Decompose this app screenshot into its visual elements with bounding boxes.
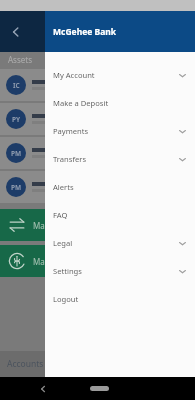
button[interactable]: PM [0,137,195,169]
button[interactable]: IC [0,69,195,101]
button[interactable]: Transfers [45,145,195,173]
button[interactable]: Payments [45,117,195,145]
staticText: Logout [53,294,186,304]
button[interactable]: PY [0,103,195,135]
staticText: Payments [53,126,179,136]
staticText: PM [11,149,22,158]
staticText: FAQ [53,210,186,220]
staticText: Accounts [7,358,44,370]
staticText: Settings [53,266,179,276]
button[interactable]: Make a Deposit [45,89,195,117]
button[interactable]: My Account [45,61,195,89]
staticText: Alerts [53,182,186,192]
button[interactable]: Settings [45,257,195,285]
staticText: Make a Deposit [53,98,186,108]
staticText: PY [12,115,21,124]
staticText: PM [11,183,22,192]
staticText: My Account [53,70,179,80]
button[interactable]: Make a Payment [0,245,195,277]
button[interactable]: Logout [45,285,195,313]
staticText: IC [13,81,20,90]
staticText: McGehee Bank [53,26,117,38]
button[interactable]: Legal [45,229,195,257]
button[interactable]: PM [0,171,195,203]
button[interactable]: Make a Transfer [0,209,195,241]
button[interactable]: Home [90,386,109,391]
button[interactable]: System back [34,380,52,398]
staticText: Make a Transfer [33,220,94,231]
button[interactable]: Back [5,21,27,43]
staticText: Transfers [53,154,179,164]
button[interactable]: McGehee Bank [45,11,195,52]
staticText: Assets [8,54,33,65]
button[interactable]: Alerts [45,173,195,201]
button[interactable]: FAQ [45,201,195,229]
staticText: Make a Payment [33,256,96,267]
staticText: Legal [53,238,179,248]
